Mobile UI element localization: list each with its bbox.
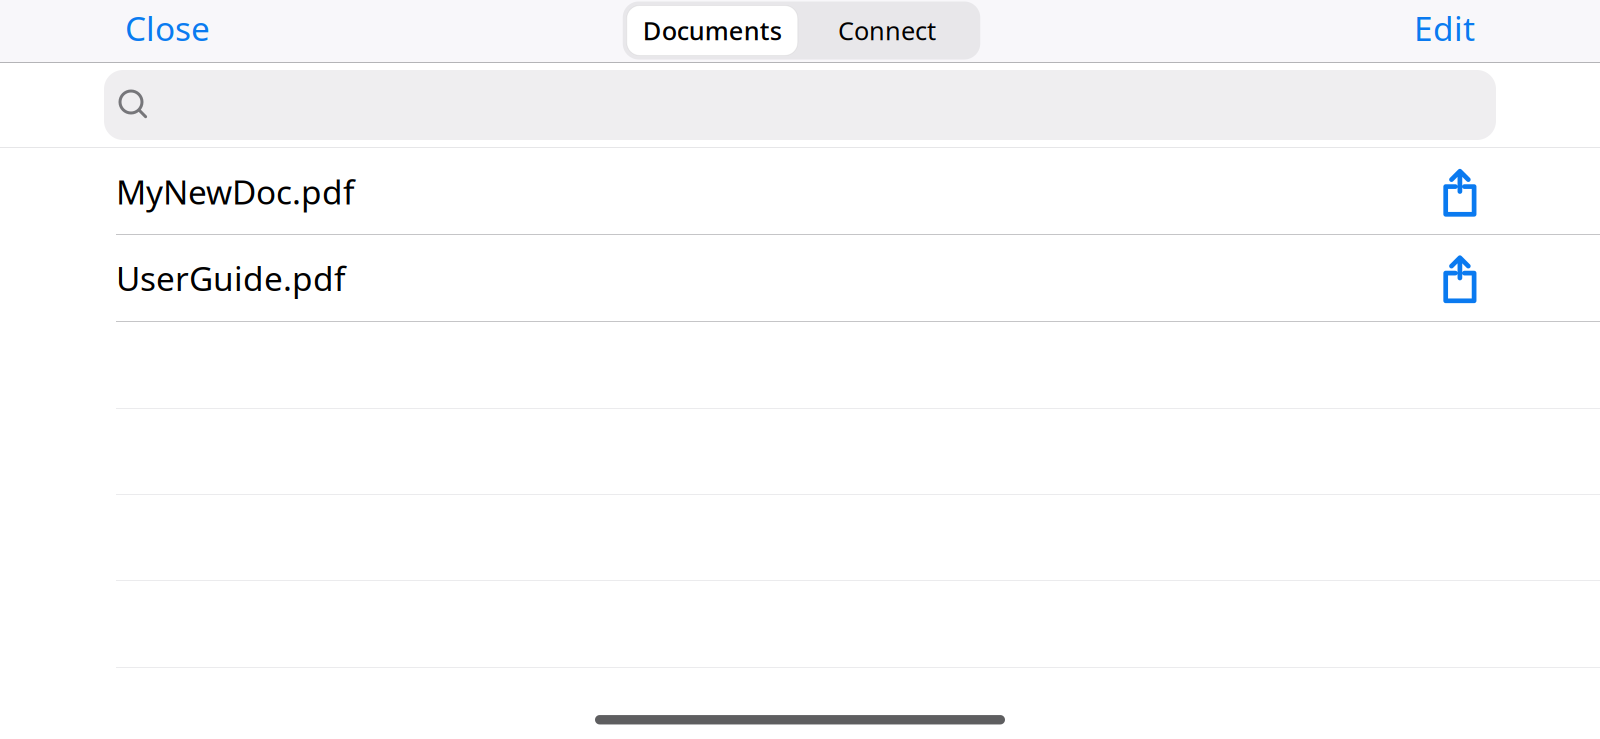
staticText: Connect xyxy=(838,14,936,47)
button[interactable]: Share MyNewDoc.pdf xyxy=(1409,149,1600,234)
button[interactable]: Documents xyxy=(627,5,798,55)
button[interactable]: Search xyxy=(104,70,1496,140)
button[interactable]: UserGuide.pdf xyxy=(116,235,1409,321)
button[interactable]: Connect xyxy=(798,5,976,55)
staticText: Documents xyxy=(643,14,782,47)
button[interactable]: Edit xyxy=(1398,0,1491,62)
button[interactable]: Close xyxy=(109,0,226,62)
staticText: Edit xyxy=(1414,6,1475,50)
button[interactable]: Share UserGuide.pdf xyxy=(1409,235,1600,321)
button[interactable]: MyNewDoc.pdf xyxy=(116,149,1409,234)
staticText: Close xyxy=(125,6,210,50)
staticText: UserGuide.pdf xyxy=(116,256,345,300)
staticText: MyNewDoc.pdf xyxy=(116,169,354,214)
